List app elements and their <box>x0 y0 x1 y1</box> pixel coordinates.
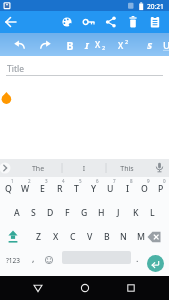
staticText: S <box>147 39 153 52</box>
button[interactable]: . <box>132 246 142 270</box>
button[interactable]: ?123 <box>0 248 25 272</box>
staticText: N <box>120 231 127 243</box>
button[interactable] <box>100 11 122 33</box>
staticText: W <box>21 183 30 195</box>
staticText: L <box>150 207 155 219</box>
staticText: H <box>98 207 105 219</box>
button[interactable]: Q <box>0 177 17 201</box>
staticText: 1 <box>11 178 14 184</box>
button[interactable]: V <box>81 225 98 249</box>
button[interactable]: X <box>117 38 131 52</box>
staticText: I <box>126 183 130 195</box>
button[interactable]: J <box>110 201 127 225</box>
button[interactable] <box>0 225 25 249</box>
button[interactable]: R <box>51 177 68 201</box>
staticText: ?123 <box>6 256 20 265</box>
button[interactable]: U <box>102 177 119 201</box>
button[interactable]: The <box>20 164 56 174</box>
button[interactable]: P <box>153 177 169 201</box>
button[interactable] <box>147 255 164 272</box>
staticText: A <box>14 207 20 219</box>
staticText: X <box>53 231 59 243</box>
button[interactable]: C <box>64 225 81 249</box>
staticText: X <box>95 39 101 51</box>
button[interactable]: U <box>162 38 169 52</box>
button[interactable] <box>0 159 16 177</box>
button[interactable]: H <box>93 201 110 225</box>
staticText: T <box>74 183 79 195</box>
staticText: S <box>31 207 36 219</box>
button[interactable] <box>28 278 48 298</box>
button[interactable]: I <box>81 38 93 52</box>
button[interactable]: S <box>143 38 156 52</box>
staticText: K <box>133 207 139 219</box>
staticText: D <box>47 207 54 219</box>
button[interactable]: I <box>119 177 136 201</box>
button[interactable] <box>2 13 20 31</box>
staticText: P <box>158 183 164 195</box>
staticText: G <box>81 207 88 219</box>
button[interactable]: L <box>144 201 161 225</box>
button[interactable]: This <box>109 164 145 174</box>
button[interactable]: , <box>26 246 40 270</box>
button[interactable] <box>144 11 166 33</box>
staticText: C <box>70 231 76 243</box>
button[interactable]: X <box>94 38 108 52</box>
button[interactable] <box>35 34 55 54</box>
button[interactable]: G <box>76 201 93 225</box>
button[interactable]: Z <box>30 225 47 249</box>
button[interactable]: E <box>34 177 51 201</box>
staticText: 8 <box>130 178 133 184</box>
staticText: Z <box>36 231 41 243</box>
button[interactable]: T <box>68 177 85 201</box>
staticText: F <box>65 207 70 219</box>
staticText: X <box>118 40 124 52</box>
staticText: , <box>32 252 35 264</box>
button[interactable]: N <box>115 225 132 249</box>
staticText: Q <box>5 183 12 195</box>
button[interactable]: O <box>136 177 153 201</box>
staticText: E <box>40 183 45 195</box>
button[interactable] <box>121 278 141 298</box>
staticText: 3 <box>45 178 48 184</box>
staticText: M <box>137 231 145 243</box>
button[interactable]: M <box>132 225 149 249</box>
staticText: I <box>85 39 89 52</box>
button[interactable]: Y <box>85 177 102 201</box>
staticText: 5 <box>79 178 82 184</box>
button[interactable] <box>10 34 30 54</box>
button[interactable]: B <box>60 39 80 53</box>
staticText: O <box>141 183 148 195</box>
staticText: 2 <box>28 178 31 184</box>
staticText: 6 <box>96 178 99 184</box>
button[interactable]: W <box>17 177 34 201</box>
staticText: B <box>104 231 110 243</box>
staticText: 4 <box>62 178 65 184</box>
button[interactable]: X <box>47 225 64 249</box>
button[interactable] <box>122 11 144 33</box>
staticText: U <box>163 39 169 52</box>
staticText: V <box>87 231 93 243</box>
button[interactable]: S <box>25 201 42 225</box>
button[interactable] <box>144 225 169 249</box>
button[interactable]: A <box>8 201 25 225</box>
staticText: J <box>117 207 120 219</box>
button[interactable]: D <box>42 201 59 225</box>
staticText: Title <box>7 63 24 75</box>
staticText: U <box>107 183 114 195</box>
button[interactable] <box>56 11 78 33</box>
button[interactable]: I <box>69 164 99 174</box>
staticText: . <box>136 252 139 264</box>
staticText: 20:21 <box>147 2 164 11</box>
button[interactable]: B <box>98 225 115 249</box>
button[interactable] <box>78 11 100 33</box>
staticText: 7 <box>113 178 116 184</box>
button[interactable] <box>41 247 57 273</box>
staticText: R <box>57 183 63 195</box>
button[interactable]: F <box>59 201 76 225</box>
staticText: 2 <box>102 44 106 51</box>
staticText: Y <box>91 183 97 195</box>
button[interactable] <box>75 278 95 298</box>
button[interactable]: K <box>127 201 144 225</box>
